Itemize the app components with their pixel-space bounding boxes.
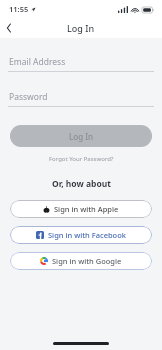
staticText: Log In [67, 22, 95, 34]
staticText: Password [9, 91, 48, 103]
button[interactable]: Back [0, 19, 18, 37]
staticText: Or, how about [52, 178, 111, 190]
button[interactable]: Email Address [8, 56, 154, 72]
staticText: Sign in with Facebook [48, 230, 126, 240]
button[interactable]: Log In [10, 125, 152, 147]
staticText: Sign in with Google [52, 256, 122, 266]
button[interactable]: Password [8, 91, 154, 107]
staticText: Email Address [9, 56, 66, 68]
button[interactable]: Sign in with Google [10, 252, 152, 270]
staticText: Forgot Your Password? [49, 155, 114, 163]
staticText: 11:55 [9, 4, 29, 14]
staticText: Log In [69, 131, 94, 142]
button[interactable]: Sign in with Facebook [10, 226, 152, 244]
button[interactable]: Sign in with Apple [10, 200, 152, 218]
staticText: Sign in with Apple [54, 204, 119, 214]
button[interactable]: Forgot Your Password? [43, 153, 120, 165]
